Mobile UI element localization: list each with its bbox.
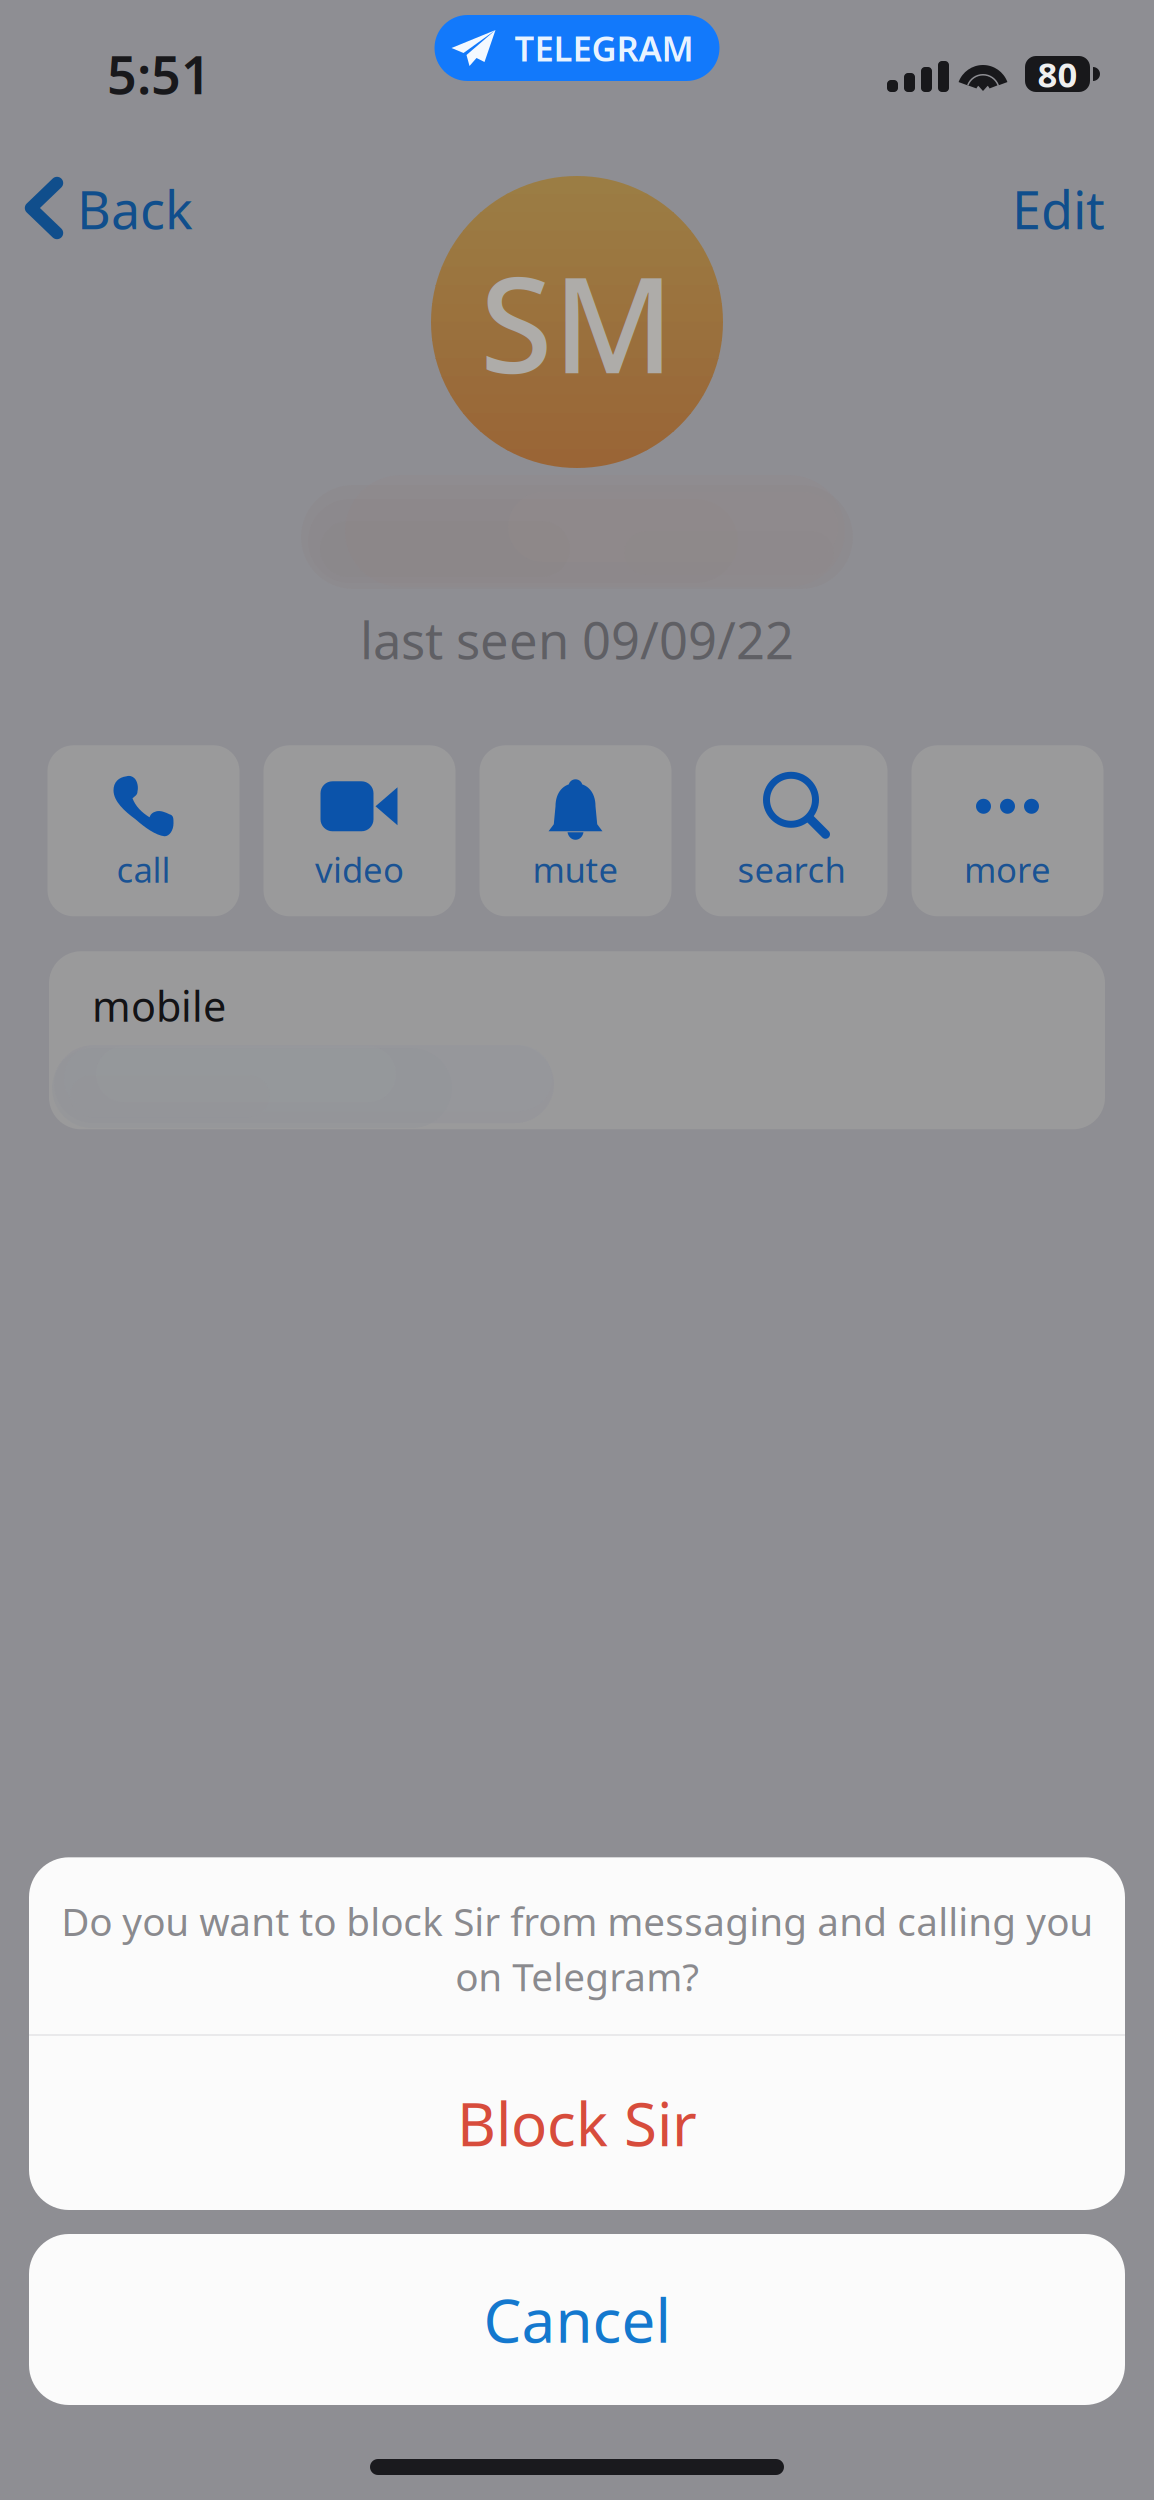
button[interactable]: Block Sir — [29, 2036, 1125, 2210]
staticText: 5:51 — [107, 39, 211, 109]
staticText: 80 — [1037, 51, 1077, 97]
button[interactable]: Back — [0, 170, 193, 248]
staticText: SM — [480, 234, 674, 410]
staticText: Edit — [1012, 174, 1105, 244]
staticText: more — [964, 846, 1051, 892]
button[interactable]: Edit — [1012, 170, 1154, 248]
button[interactable]: mobile — [49, 951, 1105, 1129]
button[interactable]: Cancel — [29, 2234, 1125, 2405]
button[interactable]: call — [47, 745, 239, 916]
staticText: mobile — [92, 978, 226, 1033]
staticText: last seen 09/09/22 — [360, 606, 794, 673]
button[interactable]: video — [263, 745, 455, 916]
staticText: Cancel — [483, 2280, 670, 2359]
staticText: Do you want to block Sir from messaging … — [61, 1895, 1093, 2002]
staticText: video — [315, 846, 404, 892]
button[interactable]: mute — [479, 745, 671, 916]
staticText: search — [737, 846, 845, 892]
staticText: Block Sir — [457, 2083, 697, 2163]
staticText: call — [116, 846, 170, 892]
staticText: TELEGRAM — [514, 25, 693, 71]
staticText: mute — [532, 846, 618, 892]
button[interactable]: more — [911, 745, 1103, 916]
staticText: Back — [77, 174, 193, 244]
button[interactable]: search — [695, 745, 887, 916]
